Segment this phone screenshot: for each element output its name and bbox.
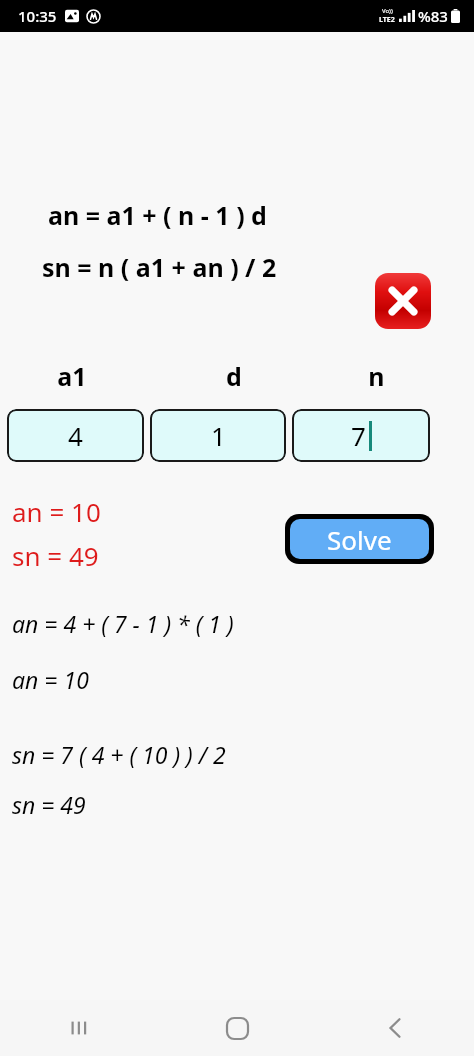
staticText: an = 4 + ( 7 - 1 ) * ( 1 ) [12, 608, 234, 639]
button[interactable]: Home [158, 1000, 316, 1056]
button[interactable]: Back [316, 1000, 474, 1056]
staticText: 10:35 [18, 6, 57, 26]
button[interactable]: Solve [290, 519, 429, 559]
staticText: d [226, 359, 242, 393]
staticText: Solve [327, 522, 392, 557]
button[interactable]: 1 [150, 409, 286, 462]
button[interactable]: Clear [375, 273, 431, 329]
staticText: n [368, 359, 385, 393]
staticText: 4 [68, 418, 83, 453]
button[interactable]: Recent apps [0, 1000, 158, 1056]
staticText: sn = 49 [12, 538, 99, 573]
staticText: sn = n ( a1 + an ) / 2 [42, 250, 277, 284]
staticText: an = a1 + ( n - 1 ) d [48, 198, 267, 232]
staticText: 1 [211, 418, 226, 453]
staticText: Vo)) [382, 7, 393, 15]
staticText: LTE2 [379, 15, 395, 25]
staticText: sn = 7 ( 4 + ( 10 ) ) / 2 [12, 739, 226, 770]
staticText: an = 10 [12, 494, 101, 529]
button[interactable]: 4 [7, 409, 144, 462]
staticText: an = 10 [12, 664, 89, 695]
staticText: sn = 49 [12, 789, 86, 820]
staticText: %83 [418, 6, 448, 26]
button[interactable]: 7 [292, 409, 430, 462]
staticText: 7 [351, 418, 366, 453]
staticText: a1 [57, 359, 87, 393]
